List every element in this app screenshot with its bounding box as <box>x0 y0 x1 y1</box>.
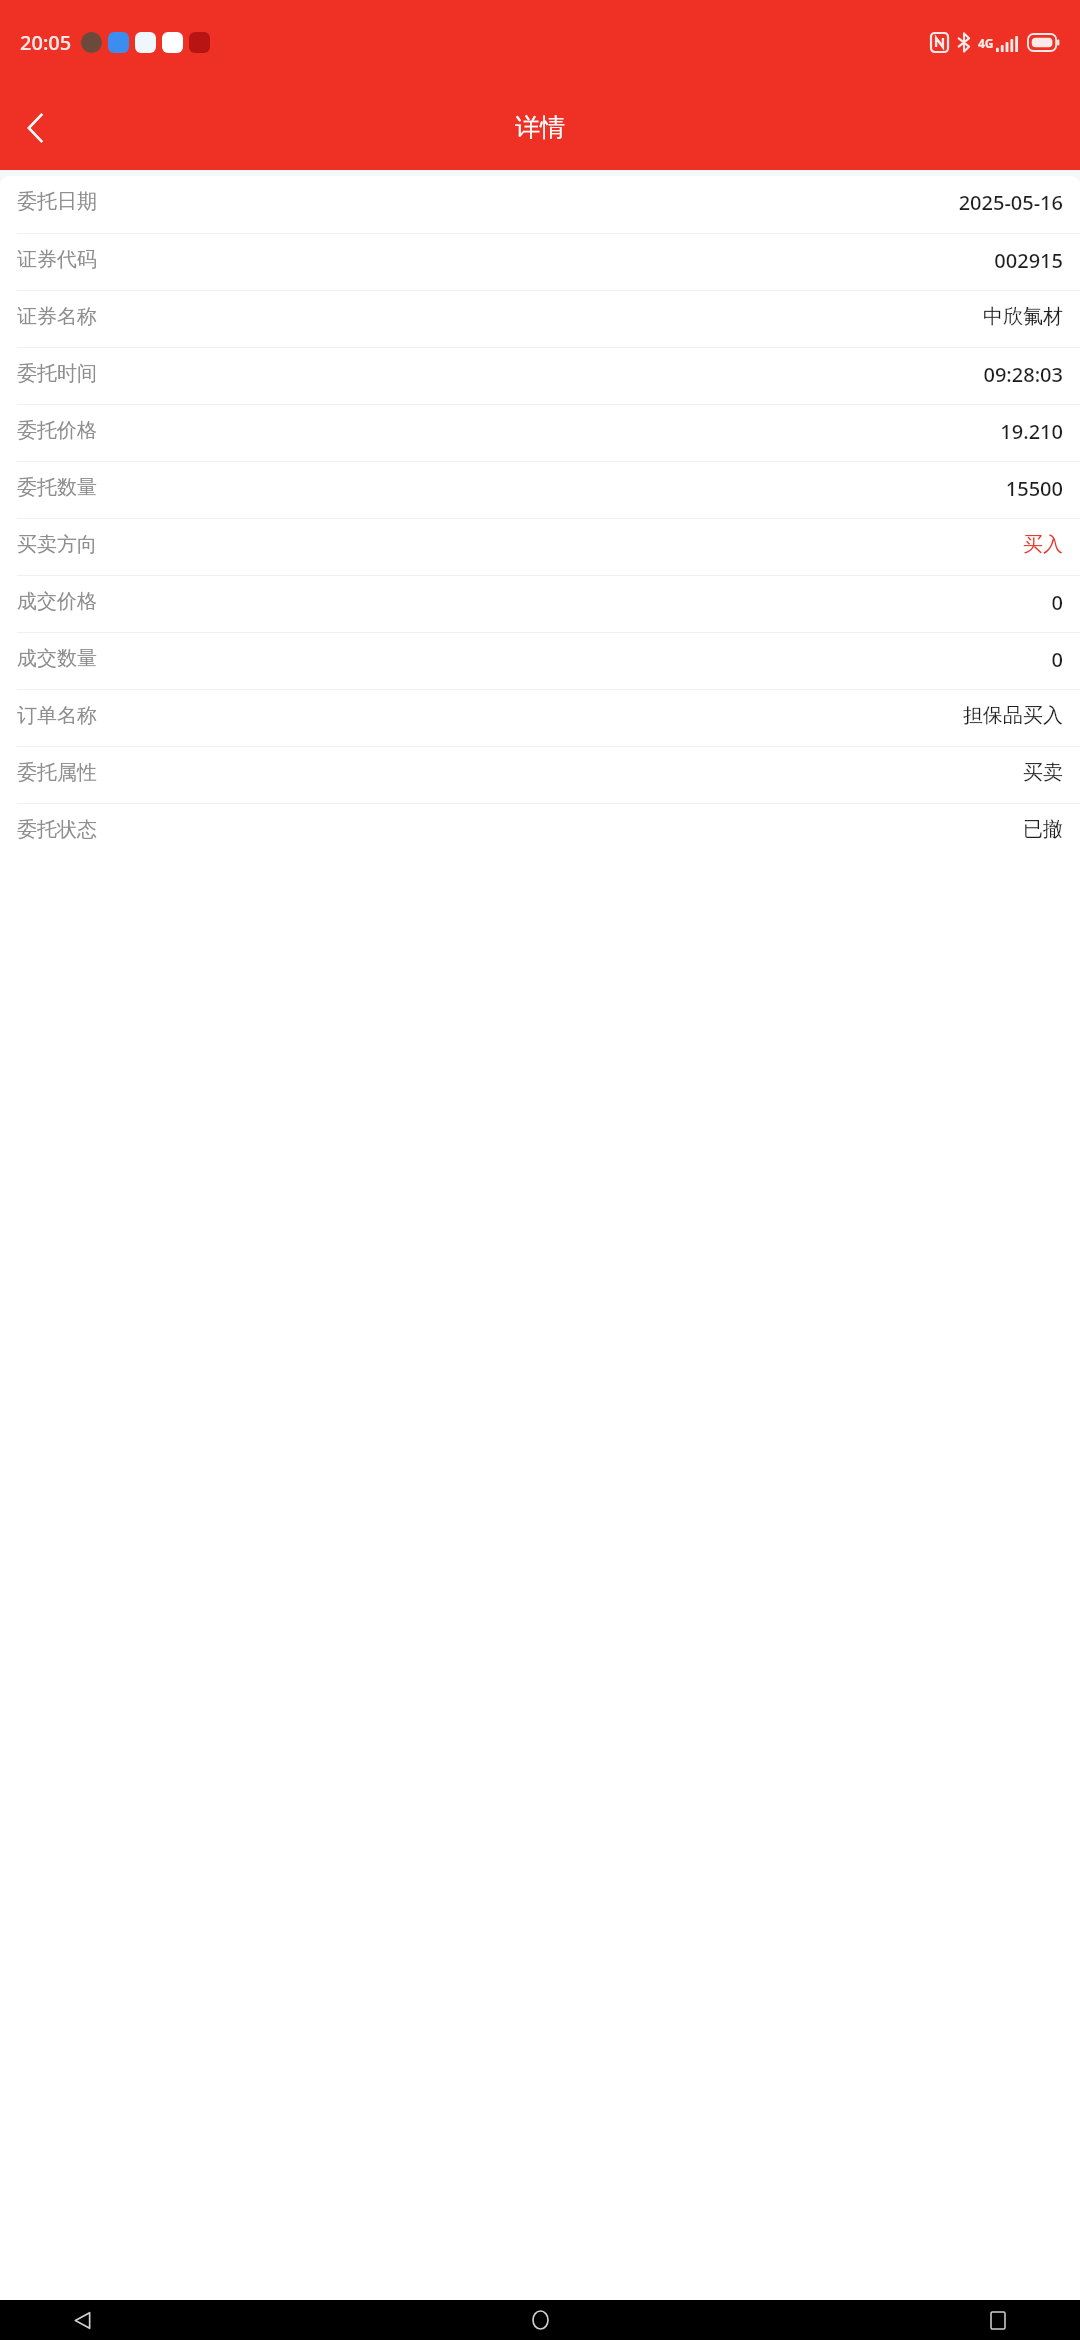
staticText: 20:05 <box>20 29 72 56</box>
staticText: 买卖 <box>1023 760 1063 785</box>
staticText: 买入 <box>1023 532 1063 557</box>
staticText: 证券代码 <box>17 247 97 272</box>
button[interactable]: 委托属性 <box>0 747 1080 803</box>
staticText: 证券名称 <box>17 304 97 329</box>
button[interactable]: 买卖方向 <box>0 519 1080 575</box>
staticText: 0 <box>1051 589 1063 616</box>
button[interactable]: 委托状态 <box>0 804 1080 860</box>
staticText: 4G <box>978 35 994 51</box>
staticText: 0 <box>1051 646 1063 673</box>
button[interactable]: 委托价格 <box>0 405 1080 461</box>
staticText: 成交价格 <box>17 589 97 614</box>
staticText: 19.210 <box>1000 418 1063 445</box>
staticText: 详情 <box>515 112 565 143</box>
staticText: 2025-05-16 <box>958 189 1063 216</box>
staticText: 委托价格 <box>17 418 97 443</box>
staticText: 担保品买入 <box>963 703 1063 728</box>
staticText: 已撤 <box>1023 817 1063 842</box>
staticText: 委托日期 <box>17 189 97 214</box>
button[interactable]: Back <box>60 2300 104 2340</box>
staticText: 09:28:03 <box>983 361 1063 388</box>
button[interactable]: 委托时间 <box>0 348 1080 404</box>
staticText: 15500 <box>1005 475 1063 502</box>
staticText: 委托数量 <box>17 475 97 500</box>
button[interactable]: Recent apps <box>976 2300 1020 2340</box>
staticText: 委托属性 <box>17 760 97 785</box>
button[interactable]: 证券代码 <box>0 234 1080 290</box>
button[interactable]: 成交数量 <box>0 633 1080 689</box>
staticText: 委托时间 <box>17 361 97 386</box>
staticText: 成交数量 <box>17 646 97 671</box>
button[interactable]: Back <box>8 100 64 156</box>
staticText: 中欣氟材 <box>983 304 1063 329</box>
button[interactable]: 成交价格 <box>0 576 1080 632</box>
staticText: 002915 <box>994 247 1063 274</box>
staticText: 买卖方向 <box>17 532 97 557</box>
staticText: 委托状态 <box>17 817 97 842</box>
button[interactable]: 委托数量 <box>0 462 1080 518</box>
button[interactable]: 订单名称 <box>0 690 1080 746</box>
staticText: 订单名称 <box>17 703 97 728</box>
button[interactable]: 证券名称 <box>0 291 1080 347</box>
button[interactable]: 委托日期 <box>0 176 1080 233</box>
button[interactable]: Home <box>518 2300 562 2340</box>
